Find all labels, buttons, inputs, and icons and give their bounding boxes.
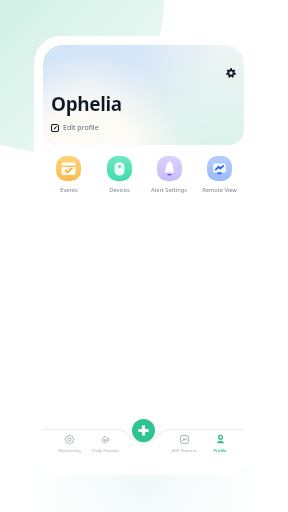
button[interactable]: Edit profile bbox=[51, 123, 99, 133]
button[interactable]: Profile bbox=[202, 435, 238, 453]
button[interactable]: Settings bbox=[222, 64, 239, 81]
button[interactable]: AGP Reports bbox=[166, 435, 202, 453]
staticText: Alert Settings bbox=[151, 186, 187, 194]
staticText: Monitoring bbox=[58, 447, 81, 453]
staticText: Devices bbox=[109, 186, 130, 194]
staticText: AGP Reports bbox=[171, 447, 197, 453]
button[interactable]: Devices bbox=[94, 156, 144, 194]
staticText: Ophelia bbox=[51, 91, 122, 117]
staticText: Profile bbox=[213, 447, 227, 453]
staticText: Events bbox=[60, 186, 78, 194]
button[interactable]: Add bbox=[132, 419, 155, 442]
button[interactable]: Daily Reports bbox=[87, 435, 123, 453]
button[interactable]: Events bbox=[43, 156, 94, 194]
button[interactable]: Monitoring bbox=[51, 435, 87, 453]
button[interactable]: Remote View bbox=[194, 156, 244, 194]
button[interactable]: Alert Settings bbox=[144, 156, 194, 194]
staticText: Remote View bbox=[202, 186, 237, 194]
staticText: Daily Reports bbox=[92, 447, 119, 453]
staticText: Edit profile bbox=[63, 123, 99, 133]
